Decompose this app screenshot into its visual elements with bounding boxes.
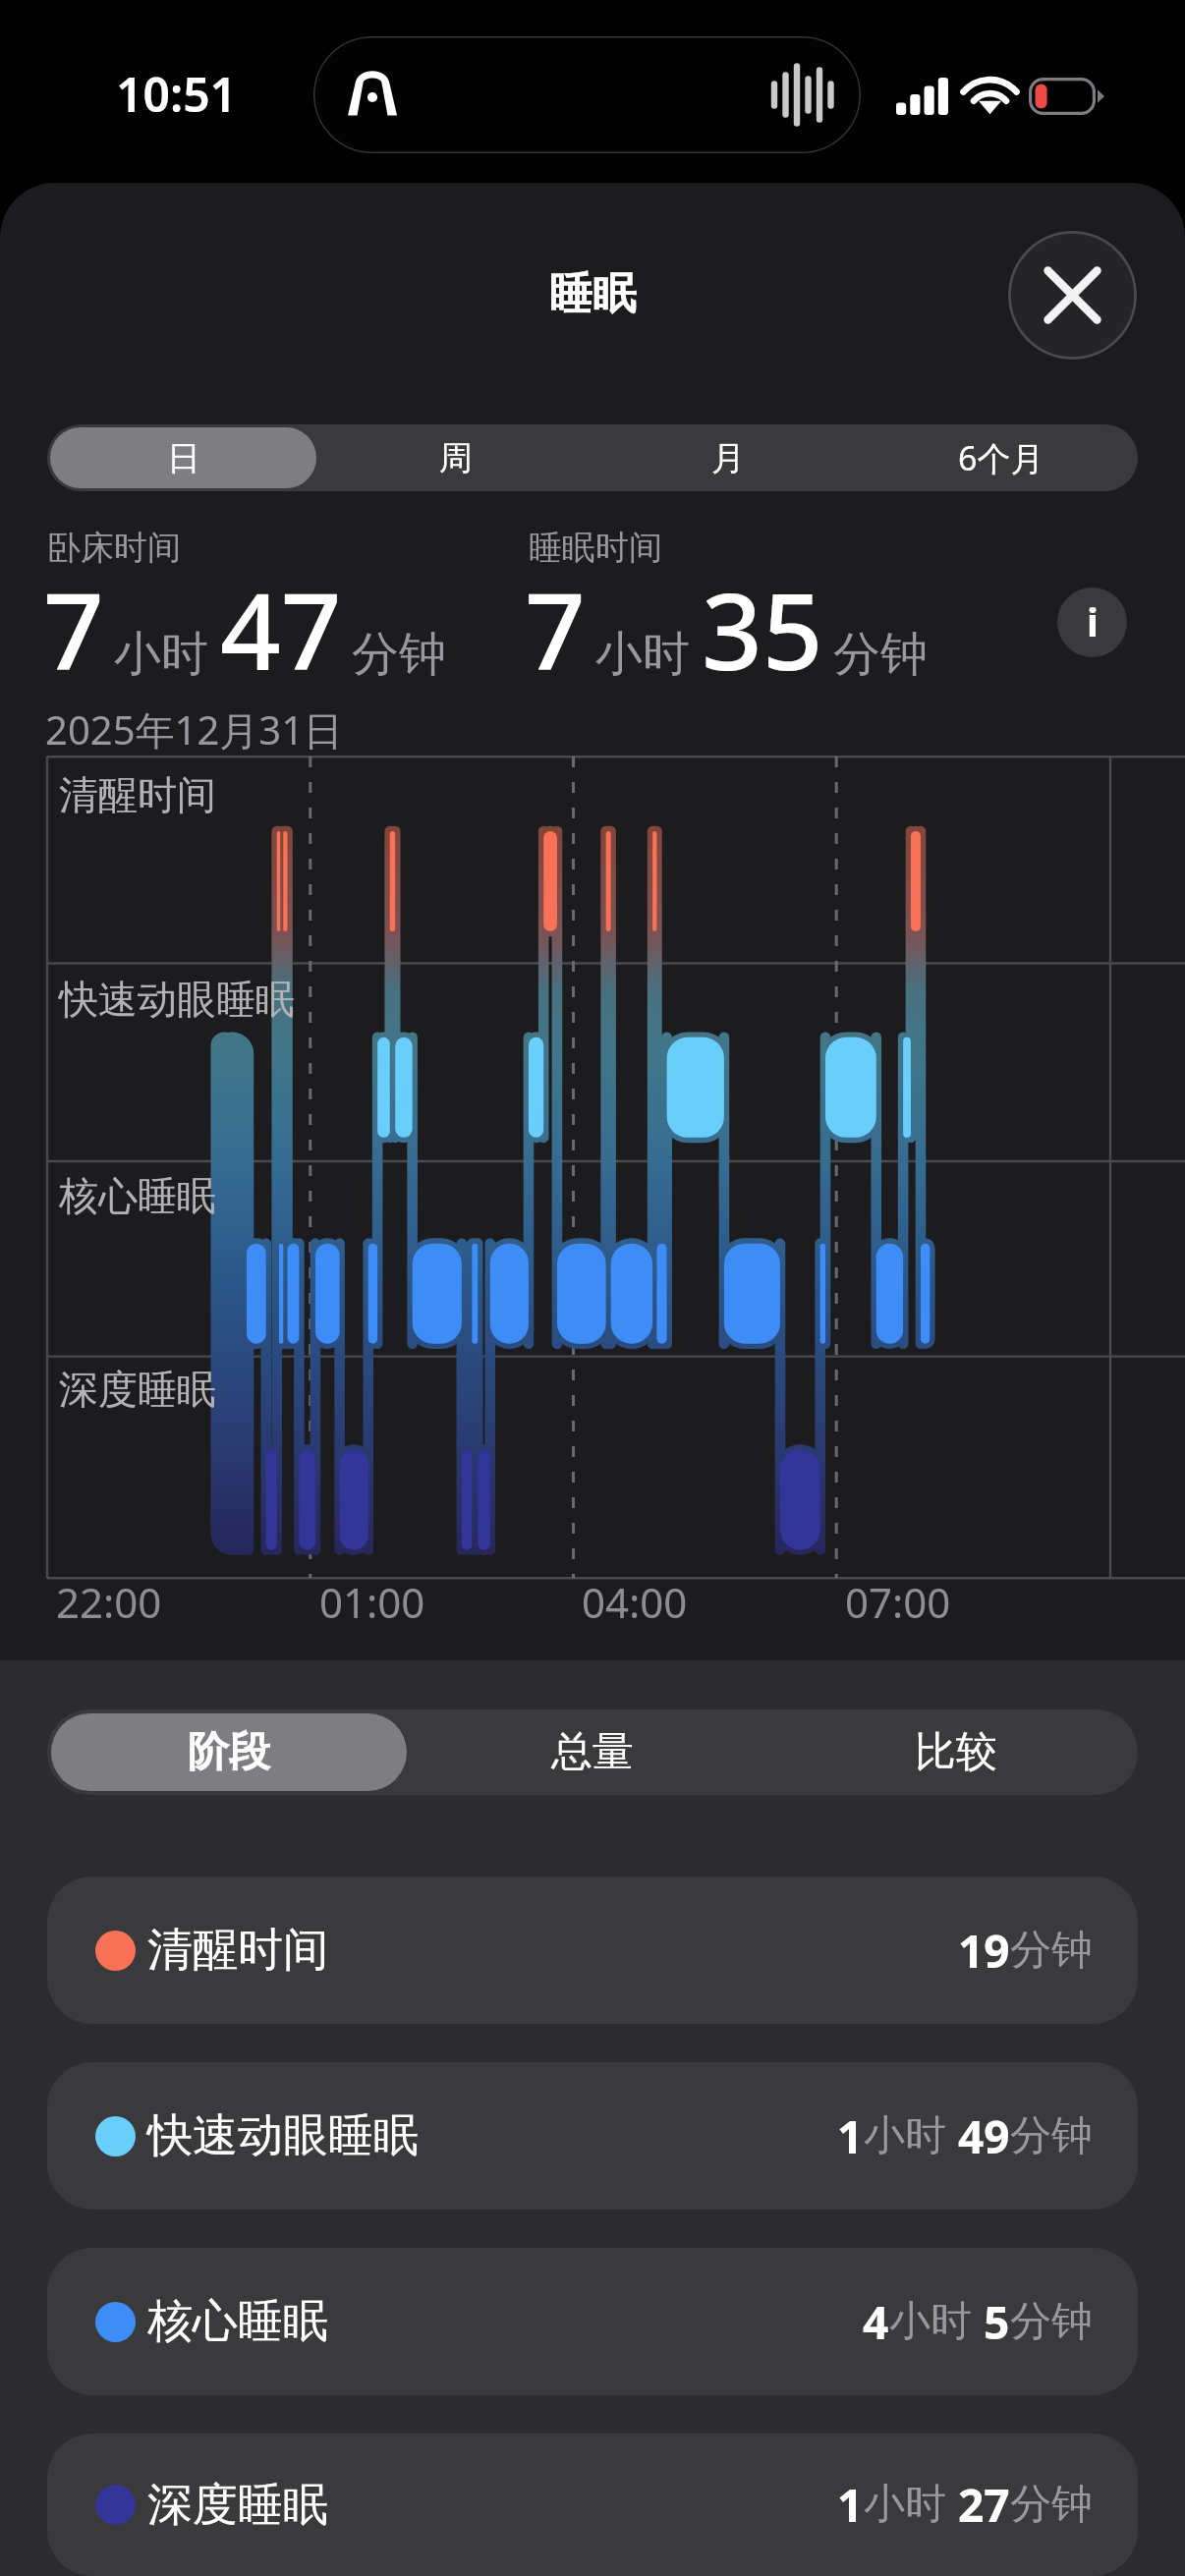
staticText: 小时 <box>864 2479 946 2531</box>
staticText: 深度睡眠 <box>147 2477 328 2534</box>
staticText: 22:00 <box>56 1574 162 1630</box>
staticText: 小时 <box>595 625 690 684</box>
staticText: 19 <box>958 1920 1010 1982</box>
staticText: 6个月 <box>958 435 1044 480</box>
staticText: 睡眠 <box>549 267 636 321</box>
button[interactable]: 周 <box>322 427 589 488</box>
staticText: 快速动眼睡眠 <box>59 975 295 1024</box>
staticText: 日 <box>167 437 200 479</box>
staticText: 分钟 <box>1010 1925 1093 1977</box>
staticText: 清醒时间 <box>147 1922 328 1979</box>
button[interactable]: 快速动眼睡眠 <box>47 2062 1138 2210</box>
staticText: 27 <box>958 2474 1010 2536</box>
staticText: 月 <box>711 437 745 479</box>
staticText: 7 <box>43 557 104 701</box>
button[interactable]: 月 <box>594 427 862 488</box>
staticText: 7 <box>525 557 586 701</box>
button[interactable]: 深度睡眠 <box>47 2434 1138 2576</box>
button[interactable]: 6个月 <box>868 427 1135 488</box>
staticText: 分钟 <box>1010 2110 1093 2162</box>
button[interactable]: 清醒时间 <box>47 1876 1138 2024</box>
button[interactable]: 比较 <box>778 1713 1134 1791</box>
staticText: 小时 <box>889 2296 972 2348</box>
button[interactable]: 总量 <box>415 1713 770 1791</box>
staticText: 核心睡眠 <box>147 2293 328 2350</box>
staticText: 07:00 <box>845 1574 951 1630</box>
staticText: 分钟 <box>833 625 928 684</box>
staticText: 35 <box>702 557 823 701</box>
button[interactable]: 阶段 <box>51 1713 407 1791</box>
staticText: 分钟 <box>352 625 446 684</box>
staticText: i <box>1087 594 1099 647</box>
staticText: 2025年12月31日 <box>45 702 344 756</box>
staticText: 49 <box>958 2105 1010 2167</box>
staticText: 周 <box>439 437 473 479</box>
staticText: 5 <box>984 2291 1010 2353</box>
staticText: 04:00 <box>582 1574 688 1630</box>
staticText: 4 <box>863 2291 889 2353</box>
staticText: 小时 <box>864 2110 946 2162</box>
staticText: 深度睡眠 <box>59 1365 216 1414</box>
staticText: 清醒时间 <box>59 770 216 819</box>
staticText: 1 <box>837 2474 864 2536</box>
staticText: 卧床时间 <box>47 527 181 569</box>
button[interactable]: 核心睡眠 <box>47 2248 1138 2395</box>
staticText: 10:51 <box>116 62 238 126</box>
button[interactable]: 日 <box>50 427 316 488</box>
button[interactable]: 信息 <box>1057 588 1127 657</box>
button[interactable]: 关闭 <box>1008 231 1137 360</box>
staticText: 01:00 <box>319 1574 425 1630</box>
staticText: 分钟 <box>1010 2479 1093 2531</box>
staticText: 核心睡眠 <box>59 1171 216 1220</box>
staticText: 总量 <box>551 1726 634 1778</box>
staticText: 快速动眼睡眠 <box>147 2107 419 2164</box>
staticText: 47 <box>220 557 342 701</box>
staticText: 1 <box>837 2105 864 2167</box>
staticText: 比较 <box>915 1726 997 1778</box>
staticText: 分钟 <box>1010 2296 1093 2348</box>
staticText: 睡眠时间 <box>529 527 662 569</box>
staticText: 阶段 <box>188 1726 270 1778</box>
staticText: 小时 <box>114 625 208 684</box>
